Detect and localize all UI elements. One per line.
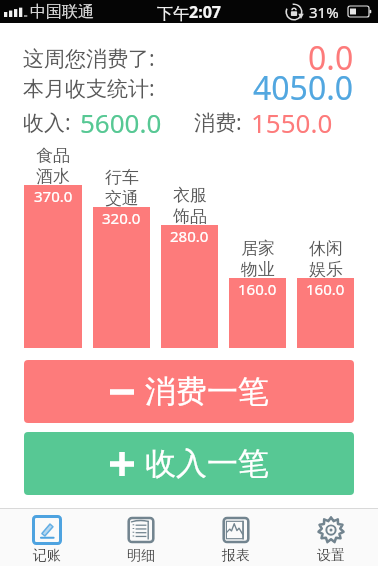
staticText: 休闲	[309, 238, 343, 259]
staticText: 消费一笔	[145, 372, 269, 411]
staticText: 160.0	[306, 279, 345, 299]
staticText: 记账	[33, 547, 61, 565]
staticText: 中国联通	[30, 2, 94, 22]
staticText: 下午	[157, 4, 189, 24]
staticText: 报表	[222, 547, 250, 565]
other: 记账	[32, 515, 62, 545]
other: 报表	[221, 515, 251, 545]
staticText: 消费:	[194, 108, 242, 137]
staticText: 160.0	[238, 279, 277, 299]
staticText: 酒水	[36, 166, 70, 187]
staticText: 4050.0	[253, 66, 354, 110]
staticText: 饰品	[173, 206, 207, 227]
button[interactable]: 记账	[0, 509, 94, 566]
staticText: 31%	[309, 2, 339, 22]
staticText: 5600.0	[80, 105, 162, 140]
staticText: 2:07	[189, 1, 221, 23]
other: 明细	[126, 515, 156, 545]
button[interactable]: 消费一笔	[24, 360, 354, 423]
staticText: 设置	[317, 547, 345, 565]
button[interactable]: 收入一笔	[24, 432, 354, 495]
staticText: 行车	[105, 167, 139, 188]
button[interactable]: 设置	[283, 509, 378, 566]
staticText: 320.0	[102, 208, 141, 228]
staticText: 物业	[241, 259, 275, 280]
staticText: 交通	[105, 188, 139, 209]
staticText: 食品	[36, 145, 70, 166]
staticText: 370.0	[34, 186, 73, 206]
staticText: 本月收支统计:	[23, 74, 155, 103]
staticText: 居家	[241, 238, 275, 259]
other: 设置	[316, 515, 346, 545]
button[interactable]: 明细	[94, 509, 188, 566]
staticText: 1550.0	[251, 105, 333, 140]
staticText: 0.0	[308, 36, 354, 80]
staticText: 明细	[127, 547, 155, 565]
staticText: 收入一笔	[145, 444, 269, 483]
staticText: 娱乐	[309, 259, 343, 280]
staticText: 这周您消费了:	[23, 44, 155, 73]
button[interactable]: 报表	[188, 509, 283, 566]
staticText: 280.0	[170, 226, 209, 246]
staticText: 收入:	[23, 108, 71, 137]
staticText: 衣服	[173, 185, 207, 206]
